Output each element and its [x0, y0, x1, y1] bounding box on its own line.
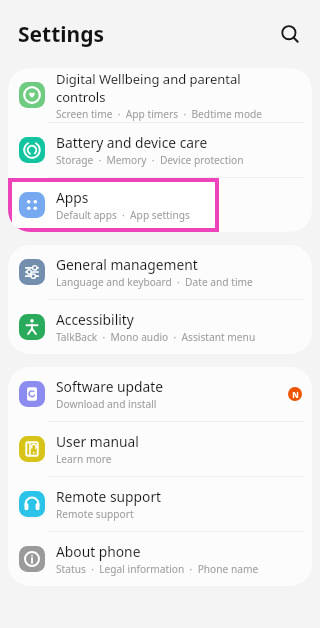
- staticText: Language and keyboard · Date and time: [56, 275, 253, 289]
- staticText: Status · Legal information · Phone name: [56, 562, 259, 576]
- staticText: Learn more: [56, 452, 112, 466]
- staticText: General management: [56, 255, 198, 274]
- staticText: Remote support: [56, 507, 134, 521]
- button[interactable]: User manual: [8, 422, 312, 476]
- button[interactable]: About phone: [8, 532, 312, 586]
- button[interactable]: Software update: [8, 367, 312, 421]
- staticText: Default apps · App settings: [56, 208, 190, 222]
- staticText: TalkBack · Mono audio · Assistant menu: [56, 330, 256, 344]
- staticText: Remote support: [56, 487, 162, 506]
- staticText: Accessibility: [56, 310, 134, 329]
- button[interactable]: Digital Wellbeing and parental controls: [8, 68, 312, 122]
- button[interactable]: Search: [272, 16, 308, 52]
- staticText: Settings: [18, 20, 105, 49]
- staticText: Software update: [56, 377, 164, 396]
- staticText: About phone: [56, 542, 141, 561]
- staticText: Digital Wellbeing and parental controls: [56, 70, 278, 106]
- button[interactable]: Apps: [8, 178, 312, 232]
- staticText: N: [292, 389, 299, 400]
- button[interactable]: Accessibility: [8, 300, 312, 354]
- staticText: Storage · Memory · Device protection: [56, 153, 244, 167]
- staticText: Battery and device care: [56, 133, 208, 152]
- staticText: User manual: [56, 432, 139, 451]
- button[interactable]: General management: [8, 245, 312, 299]
- button[interactable]: Remote support: [8, 477, 312, 531]
- staticText: Screen time · App timers · Bedtime mode: [56, 107, 263, 121]
- staticText: Download and install: [56, 397, 157, 411]
- button[interactable]: Battery and device care: [8, 123, 312, 177]
- staticText: Apps: [56, 188, 89, 207]
